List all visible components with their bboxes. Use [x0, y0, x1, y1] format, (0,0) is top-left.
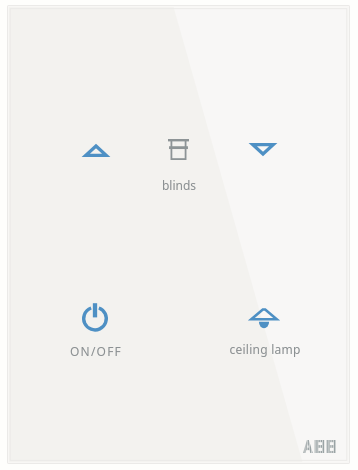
- button[interactable]: Raise blinds: [75, 130, 117, 172]
- button[interactable]: ON/OFF: [66, 295, 126, 363]
- staticText: blinds: [150, 177, 208, 239]
- staticText: ceiling lamp: [225, 341, 305, 401]
- button[interactable]: Lower blinds: [242, 130, 284, 172]
- staticText: ON/OFF: [66, 343, 126, 411]
- other: ABB: [303, 440, 336, 453]
- button[interactable]: blinds: [150, 130, 208, 192]
- button[interactable]: ceiling lamp: [225, 300, 305, 360]
